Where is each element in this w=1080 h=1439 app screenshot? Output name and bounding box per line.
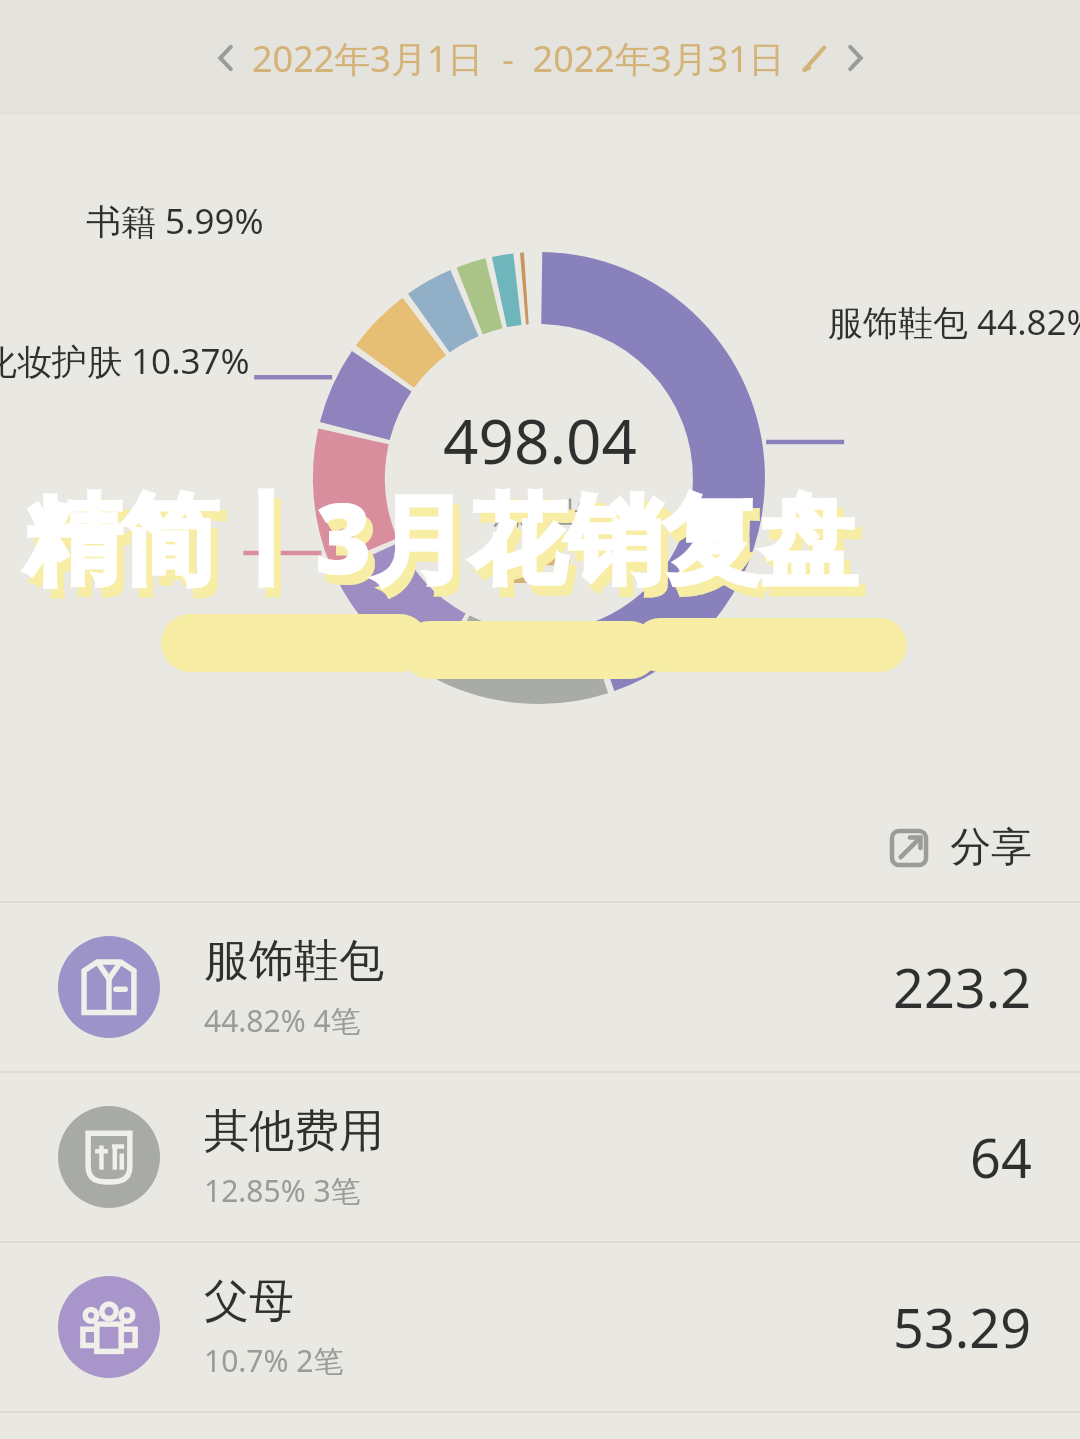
- staticText: 书籍 5.99%: [86, 197, 264, 245]
- staticText: 2022年3月1日 - 2022年3月31日: [252, 34, 785, 83]
- button[interactable]: 分享: [876, 814, 1042, 882]
- staticText: 化妆护肤 10.37%: [0, 337, 250, 385]
- button[interactable]: 服饰鞋包: [0, 903, 1080, 1071]
- staticText: 10.7% 2笔: [204, 1340, 344, 1381]
- staticText: 53.29: [893, 1290, 1032, 1364]
- button[interactable]: Previous period: [200, 32, 252, 84]
- staticText: 服饰鞋包 44.82%: [828, 298, 1080, 346]
- staticText: 498.04: [443, 398, 637, 482]
- staticText: 服饰鞋包: [204, 933, 384, 990]
- staticText: 其他费用: [204, 1103, 384, 1160]
- button[interactable]: Switch income expense: [509, 549, 571, 589]
- button[interactable]: 其他费用: [0, 1073, 1080, 1241]
- staticText: 12.85% 3笔: [204, 1170, 361, 1211]
- staticText: 总支出: [494, 494, 587, 533]
- button[interactable]: 父母: [0, 1243, 1080, 1411]
- button[interactable]: 2022年3月1日 - 2022年3月31日: [252, 34, 829, 83]
- staticText: 分享: [950, 822, 1032, 874]
- staticText: 223.2: [893, 950, 1032, 1024]
- staticText: 44.82% 4笔: [204, 1000, 361, 1041]
- staticText: 父母: [204, 1273, 294, 1330]
- button[interactable]: Next period: [829, 32, 881, 84]
- staticText: 精简丨3月花销复盘: [31, 480, 864, 612]
- staticText: 64: [970, 1120, 1032, 1194]
- staticText: 精简丨3月花销复盘: [24, 470, 857, 602]
